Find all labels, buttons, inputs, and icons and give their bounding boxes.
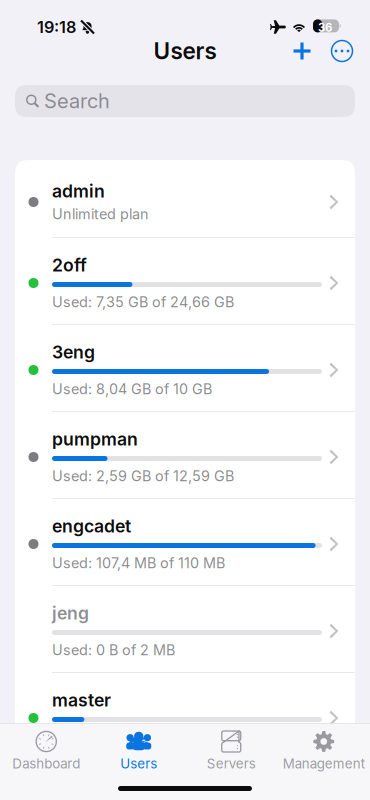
staticText: Used: 7,35 GB of 24,66 GB (52, 293, 234, 311)
button[interactable]: Servers (185, 723, 277, 778)
staticText: Users (120, 755, 157, 772)
staticText: Used: 0 B of 2 MB (52, 641, 175, 659)
staticText: Used: 107,4 MB of 110 MB (52, 554, 225, 572)
button[interactable]: Users (92, 723, 185, 778)
staticText: 3eng (52, 341, 95, 363)
staticText: Users (153, 37, 216, 65)
button[interactable]: Add user (282, 34, 322, 68)
staticText: 19:18 (37, 17, 76, 37)
staticText: Unlimited plan (52, 205, 149, 223)
staticText: Used: 2,59 GB of 12,59 GB (52, 467, 234, 485)
staticText: admin (52, 180, 105, 202)
staticText: jeng (52, 602, 89, 624)
staticText: master (52, 689, 111, 711)
button[interactable]: master (15, 673, 355, 759)
button[interactable]: engcadet (15, 499, 355, 585)
staticText: Servers (207, 755, 256, 772)
staticText: engcadet (52, 515, 131, 537)
button[interactable]: More options (322, 34, 362, 68)
button[interactable]: jeng (15, 586, 355, 672)
button[interactable]: admin (15, 160, 355, 237)
staticText: Used: 1,2 GB of 10 GB (52, 728, 200, 746)
button[interactable]: Search (0, 68, 370, 117)
button[interactable]: Dashboard (0, 723, 92, 778)
staticText: 36 (318, 21, 332, 35)
staticText: Management (283, 755, 365, 772)
staticText: Dashboard (12, 755, 80, 772)
button[interactable]: Management (277, 723, 370, 778)
button[interactable]: 3eng (15, 325, 355, 411)
staticText: pumpman (52, 428, 138, 450)
staticText: Used: 8,04 GB of 10 GB (52, 380, 212, 398)
button[interactable]: pumpman (15, 412, 355, 498)
staticText: 2off (52, 254, 87, 276)
button[interactable]: 2off (15, 238, 355, 324)
staticText: Search (44, 89, 110, 113)
